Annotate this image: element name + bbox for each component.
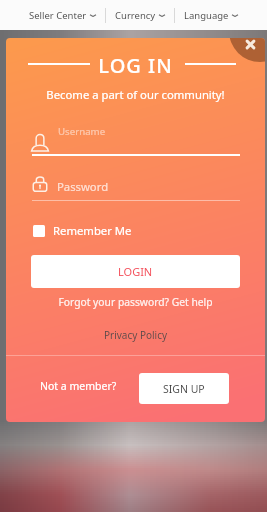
staticText: Currency bbox=[115, 9, 156, 22]
staticText: Language bbox=[184, 9, 229, 22]
staticText: Not a member? bbox=[40, 379, 117, 393]
button[interactable]: Remember Me bbox=[31, 221, 134, 240]
staticText: Seller Center bbox=[29, 9, 87, 22]
staticText: Username bbox=[58, 125, 106, 138]
staticText: LOGIN bbox=[118, 264, 153, 279]
staticText: SIGN UP bbox=[163, 382, 205, 396]
staticText: Password bbox=[57, 179, 109, 194]
staticText: LOG IN bbox=[6, 52, 265, 79]
staticText: Remember Me bbox=[53, 223, 132, 238]
button[interactable]: Forgot your password? Get help bbox=[6, 295, 265, 309]
button[interactable]: Privacy Policy bbox=[6, 328, 265, 342]
staticText: Become a part of our community! bbox=[6, 87, 265, 102]
button[interactable]: SIGN UP bbox=[139, 373, 229, 404]
button[interactable]: Close bbox=[240, 38, 261, 55]
button[interactable]: LOGIN bbox=[31, 255, 240, 288]
button[interactable]: Language bbox=[175, 3, 247, 28]
button[interactable]: Seller Center bbox=[20, 3, 105, 28]
button[interactable]: Currency bbox=[106, 3, 174, 28]
